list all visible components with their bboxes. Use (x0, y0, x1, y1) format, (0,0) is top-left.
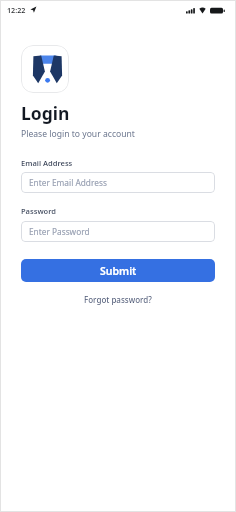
staticText: Forgot password? (84, 294, 152, 305)
button[interactable]: Forgot password? (82, 292, 154, 307)
button[interactable]: Submit (21, 259, 215, 282)
staticText: Submit (100, 264, 137, 278)
staticText: Please login to your account (21, 128, 135, 140)
staticText: Enter Email Address (29, 177, 107, 188)
staticText: 12:22 (7, 5, 26, 15)
staticText: Login (21, 101, 70, 125)
button[interactable]: Enter Email Address (21, 172, 215, 193)
staticText: Email Address (21, 158, 73, 168)
button[interactable]: Enter Password (21, 221, 215, 242)
staticText: Password (21, 206, 57, 216)
staticText: Enter Password (29, 226, 90, 237)
